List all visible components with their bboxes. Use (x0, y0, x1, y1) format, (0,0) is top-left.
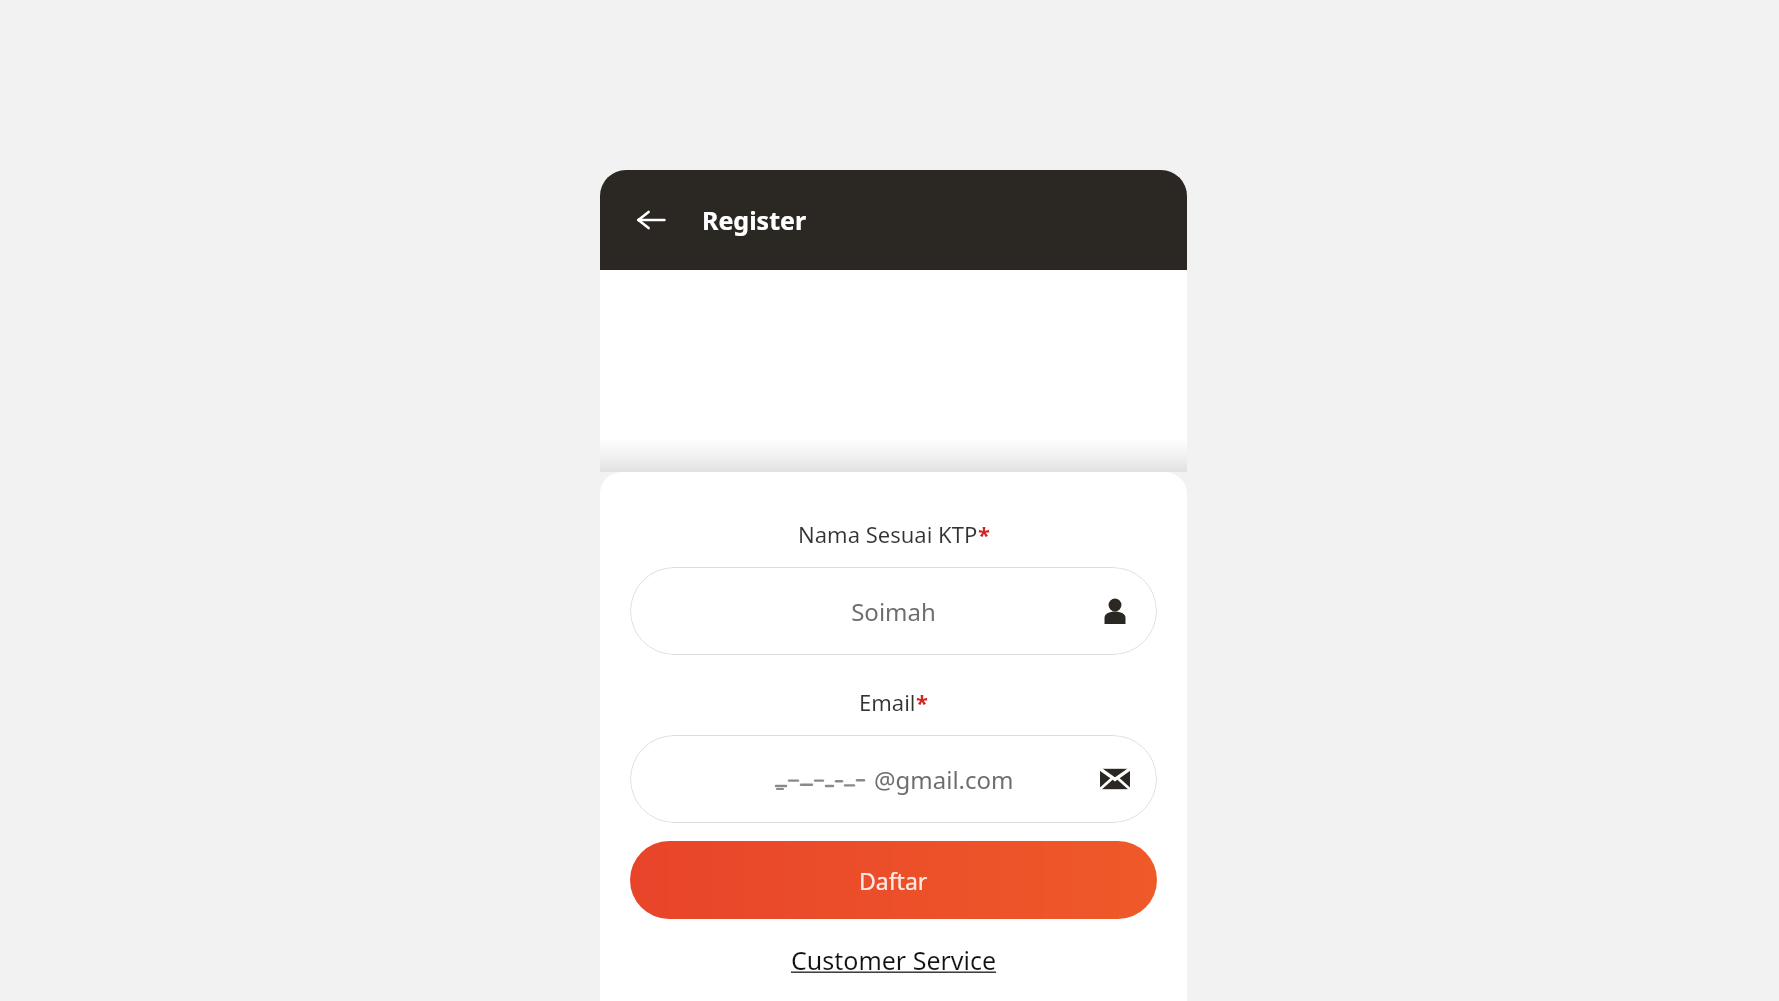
staticText: Daftar (859, 865, 928, 896)
button[interactable]: @gmail.com (630, 735, 1157, 823)
staticText: Soimah (851, 595, 936, 628)
staticText: Nama Sesuai KTP (798, 519, 978, 549)
other: Name (1095, 591, 1135, 631)
staticText: Customer Service (791, 943, 997, 977)
staticText: * (916, 687, 928, 717)
button[interactable]: Soimah (630, 567, 1157, 655)
button[interactable]: Customer Service (783, 939, 1005, 981)
staticText: Register (702, 203, 807, 237)
button[interactable]: Daftar (630, 841, 1157, 919)
button[interactable]: Back (628, 197, 674, 243)
staticText: Email (859, 687, 916, 717)
other: Email (1095, 759, 1135, 799)
staticText: * (978, 519, 990, 549)
staticText: @gmail.com (874, 763, 1014, 796)
